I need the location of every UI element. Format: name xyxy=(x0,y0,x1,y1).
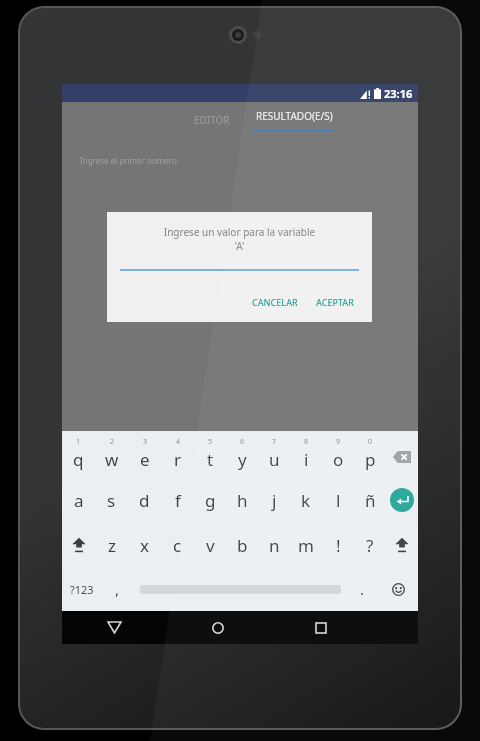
staticText: b xyxy=(237,534,248,557)
staticText: n xyxy=(269,534,280,557)
button[interactable]: m xyxy=(290,523,322,567)
button[interactable]: Backspace xyxy=(386,431,418,477)
button[interactable]: 5 xyxy=(194,431,226,477)
staticText: ñ xyxy=(365,489,376,512)
staticText: 8 xyxy=(304,437,309,447)
button[interactable]: b xyxy=(226,523,258,567)
button[interactable]: , xyxy=(102,567,133,611)
staticText: e xyxy=(140,448,150,471)
button[interactable]: 0 xyxy=(354,431,386,477)
button[interactable]: k xyxy=(290,477,322,523)
staticText: EDITOR xyxy=(194,113,230,127)
staticText: v xyxy=(206,534,215,557)
staticText: z xyxy=(108,534,116,557)
staticText: y xyxy=(238,448,247,471)
staticText: ? xyxy=(366,534,374,557)
staticText: u xyxy=(269,448,280,471)
staticText: 3 xyxy=(143,437,148,447)
staticText: a xyxy=(74,489,84,512)
button[interactable]: 9 xyxy=(322,431,354,477)
staticText: j xyxy=(272,489,277,512)
staticText: l xyxy=(336,489,341,512)
button[interactable]: ? xyxy=(354,523,386,567)
button[interactable]: Enter xyxy=(386,477,418,523)
staticText: s xyxy=(107,489,116,512)
button[interactable]: CANCELAR xyxy=(246,292,304,312)
staticText: d xyxy=(139,489,150,512)
button[interactable]: h xyxy=(226,477,258,523)
button[interactable]: ñ xyxy=(354,477,386,523)
button[interactable]: EDITOR xyxy=(180,102,244,138)
staticText: ACEPTAR xyxy=(316,296,354,308)
staticText: ! xyxy=(336,534,341,557)
staticText: Ingrese el primer numero: xyxy=(80,155,179,166)
staticText: RESULTADO(E/S) xyxy=(256,109,333,123)
button[interactable]: RESULTADO(E/S) xyxy=(250,102,338,138)
staticText: k xyxy=(301,489,311,512)
button[interactable]: v xyxy=(194,523,226,567)
button[interactable]: z xyxy=(95,523,128,567)
button[interactable]: a xyxy=(62,477,95,523)
button[interactable]: 2 xyxy=(95,431,128,477)
button[interactable]: l xyxy=(322,477,354,523)
button[interactable]: 1 xyxy=(62,431,95,477)
staticText: 2 xyxy=(110,437,115,447)
button[interactable]: f xyxy=(161,477,194,523)
staticText: r xyxy=(174,448,182,471)
staticText: q xyxy=(73,448,84,471)
button[interactable]: Shift xyxy=(386,523,418,567)
button[interactable]: d xyxy=(128,477,161,523)
staticText: w xyxy=(105,448,119,471)
staticText: 4 xyxy=(176,437,181,447)
staticText: Ingrese un valor para la variable 'A' xyxy=(107,225,372,253)
staticText: c xyxy=(173,534,182,557)
button[interactable]: c xyxy=(161,523,194,567)
staticText: 23:16 xyxy=(384,86,413,101)
button[interactable]: 8 xyxy=(290,431,322,477)
button[interactable]: Back xyxy=(62,611,166,644)
staticText: 5 xyxy=(208,437,213,447)
staticText: x xyxy=(140,534,149,557)
staticText: 0 xyxy=(368,437,373,447)
button[interactable]: 3 xyxy=(128,431,161,477)
button[interactable]: 4 xyxy=(161,431,194,477)
button[interactable]: ?123 xyxy=(62,567,102,611)
button[interactable]: Shift xyxy=(62,523,95,567)
staticText: f xyxy=(175,489,181,512)
button[interactable]: 6 xyxy=(226,431,258,477)
staticText: i xyxy=(304,448,309,471)
button[interactable]: Recents xyxy=(269,611,372,644)
button[interactable]: . xyxy=(347,567,378,611)
button[interactable]: Home xyxy=(166,611,269,644)
button[interactable]: n xyxy=(258,523,290,567)
staticText: m xyxy=(298,534,314,557)
button[interactable]: x xyxy=(128,523,161,567)
button[interactable]: 7 xyxy=(258,431,290,477)
staticText: h xyxy=(237,489,248,512)
staticText: 6 xyxy=(240,437,245,447)
staticText: . xyxy=(360,579,365,599)
staticText: ?123 xyxy=(70,582,94,597)
staticText: 7 xyxy=(272,437,277,447)
staticText: o xyxy=(333,448,344,471)
staticText: t xyxy=(207,448,214,471)
button[interactable]: ACEPTAR xyxy=(310,292,360,312)
staticText: p xyxy=(365,448,376,471)
staticText: 1 xyxy=(76,437,81,447)
button[interactable]: s xyxy=(95,477,128,523)
staticText: CANCELAR xyxy=(252,296,298,308)
button[interactable]: g xyxy=(194,477,226,523)
button[interactable]: Emoji xyxy=(378,567,418,611)
button[interactable]: Space xyxy=(133,567,347,611)
staticText: 9 xyxy=(336,437,341,447)
staticText: g xyxy=(205,489,216,512)
staticText: , xyxy=(115,579,120,599)
button[interactable]: j xyxy=(258,477,290,523)
button[interactable]: ! xyxy=(322,523,354,567)
